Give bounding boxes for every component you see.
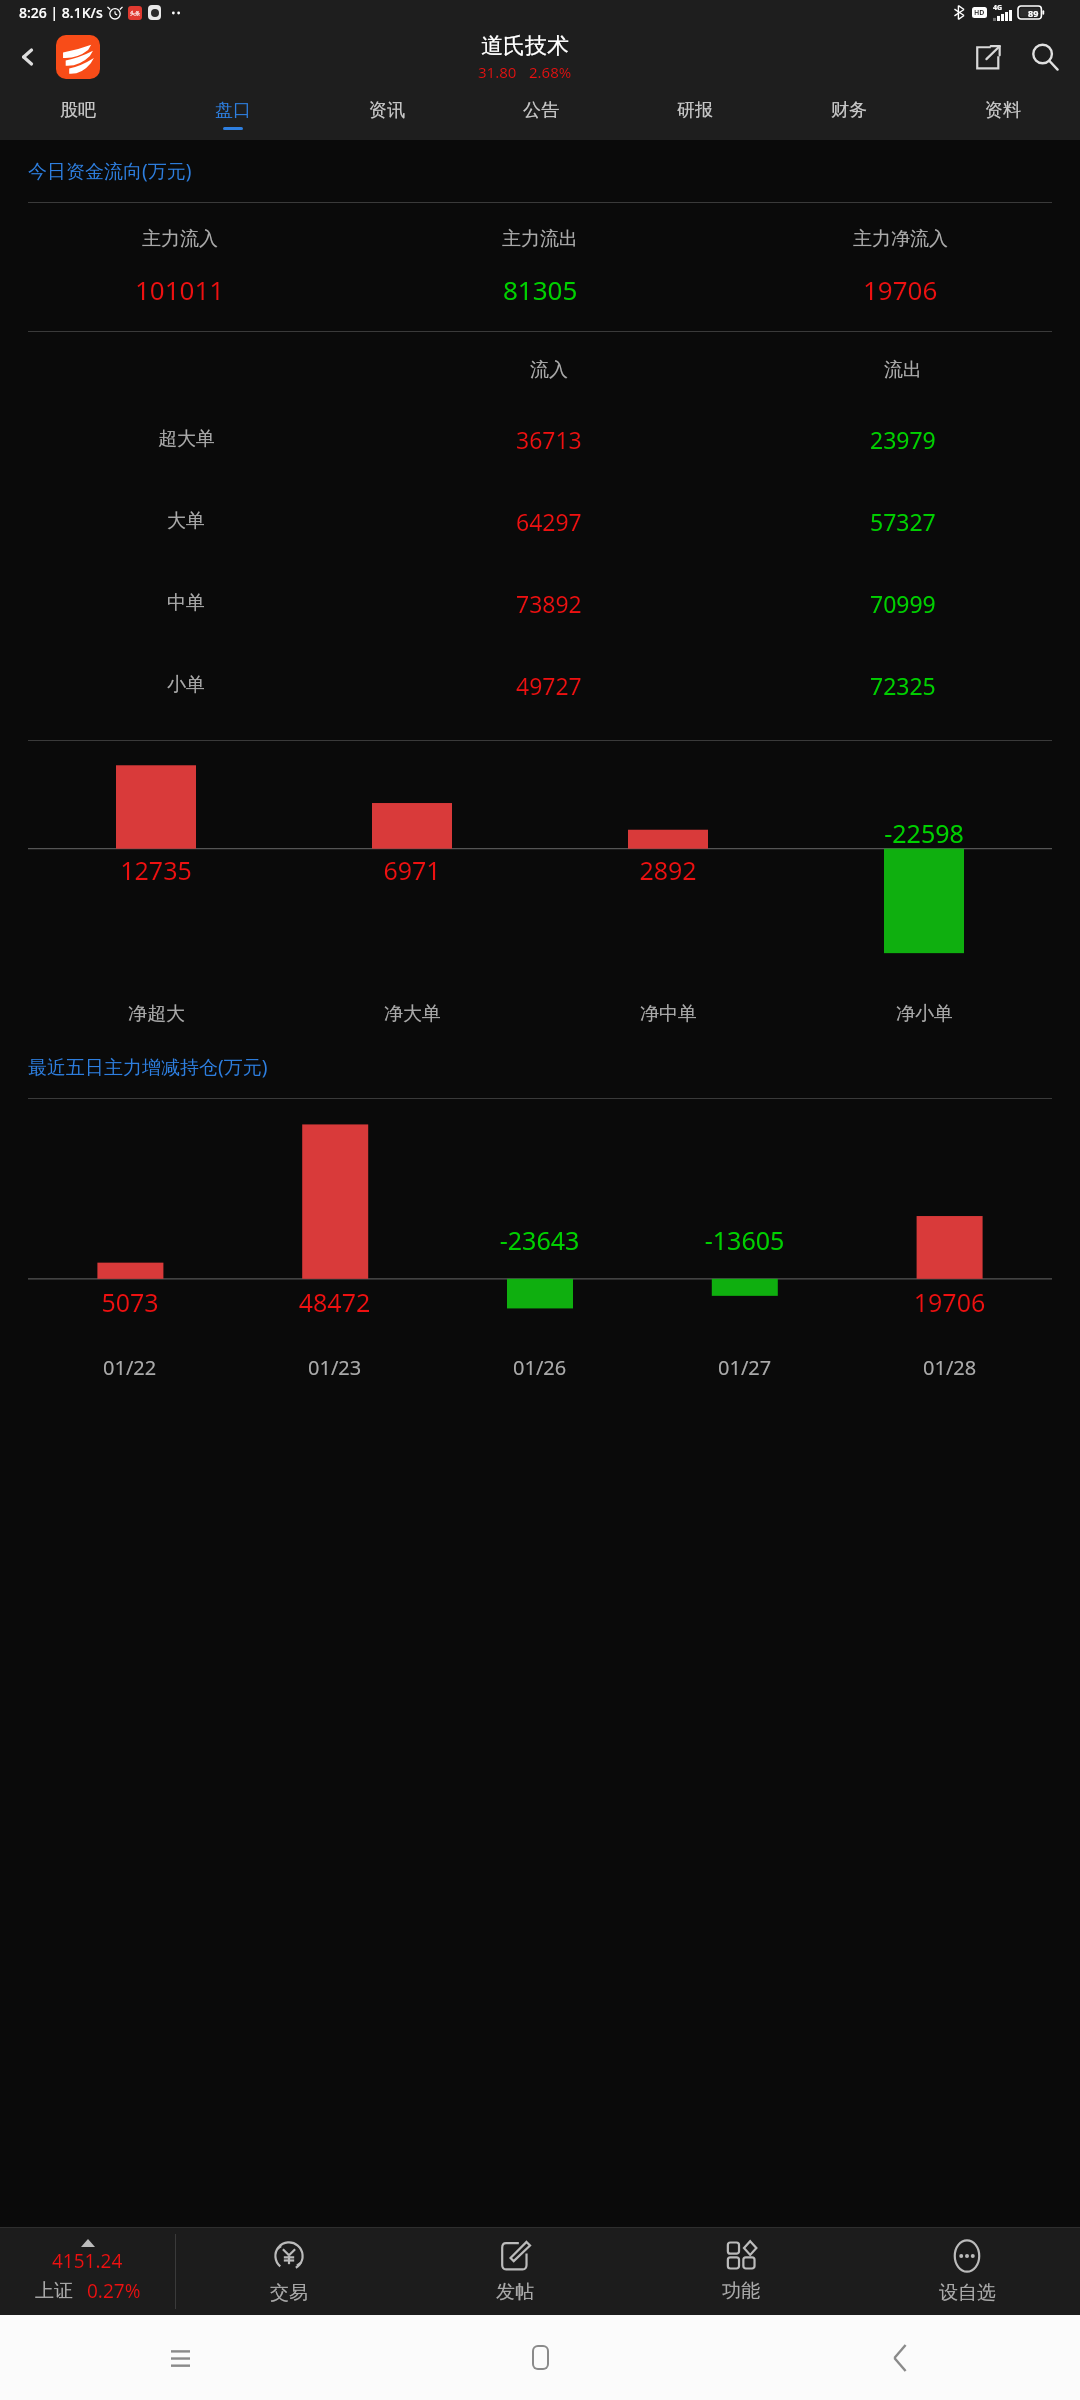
staticText: 小单	[167, 673, 205, 697]
staticText: 主力净流入	[853, 227, 948, 251]
button[interactable]: 股吧	[0, 88, 155, 140]
staticText: 交易	[270, 2281, 308, 2305]
staticText: 01/27	[718, 1354, 772, 1381]
staticText: 2892	[540, 853, 796, 887]
staticText: -22598	[796, 816, 1052, 850]
staticText: 盘口	[215, 99, 251, 122]
button[interactable]: 研报	[618, 88, 772, 140]
button[interactable]: 资讯	[310, 88, 464, 140]
staticText: 中单	[167, 591, 205, 615]
staticText: 资讯	[369, 99, 405, 122]
button[interactable]: 大单	[0, 480, 1080, 562]
staticText: 73892	[516, 588, 582, 619]
staticText: 48472	[232, 1285, 437, 1319]
staticText: 101011	[135, 272, 225, 307]
staticText: 19706	[863, 272, 938, 307]
staticText: 81305	[503, 272, 578, 307]
staticText: 净大单	[384, 1002, 441, 1026]
staticText: 4G	[993, 3, 1003, 13]
staticText: -13605	[642, 1223, 847, 1257]
staticText: 净超大	[128, 1002, 185, 1026]
button[interactable]: 盘口	[155, 88, 310, 140]
staticText: 31.80	[478, 62, 517, 82]
button[interactable]: Back	[0, 25, 56, 88]
staticText: 01/28	[923, 1354, 977, 1381]
staticText: 01/23	[308, 1354, 362, 1381]
staticText: 流出	[884, 358, 922, 382]
staticText: 72325	[870, 670, 936, 701]
staticText: 研报	[677, 99, 713, 122]
staticText: 70999	[870, 588, 936, 619]
button[interactable]: 中单	[0, 562, 1080, 644]
staticText: -23643	[437, 1223, 642, 1257]
staticText: 道氏技术	[481, 32, 569, 60]
staticText: 股吧	[60, 99, 96, 122]
staticText: 23979	[870, 424, 936, 455]
staticText: 01/22	[103, 1354, 157, 1381]
staticText: 功能	[722, 2279, 760, 2303]
staticText: 0.27%	[87, 2278, 141, 2304]
staticText: 89	[1028, 7, 1039, 19]
staticText: 超大单	[158, 427, 215, 451]
button[interactable]: 4151.24	[0, 2228, 175, 2315]
staticText: 36713	[516, 424, 582, 455]
staticText: 8:26 | 8.1K/s	[19, 3, 103, 22]
button[interactable]: App logo	[56, 35, 100, 79]
staticText: 57327	[870, 506, 936, 537]
button[interactable]: 财务	[772, 88, 926, 140]
staticText: 发帖	[496, 2280, 534, 2304]
button[interactable]: 发帖	[402, 2228, 628, 2315]
button[interactable]: Share	[958, 28, 1016, 86]
staticText: 4151.24	[52, 2248, 123, 2274]
staticText: 设自选	[939, 2281, 996, 2305]
staticText: 上证	[35, 2279, 73, 2303]
staticText: 最近五日主力增减持仓(万元)	[28, 1054, 268, 1080]
button[interactable]: 设自选	[854, 2228, 1080, 2315]
button[interactable]: 交易	[176, 2228, 402, 2315]
staticText: 19706	[847, 1285, 1052, 1319]
staticText: 财务	[831, 99, 867, 122]
staticText: 净小单	[896, 1002, 953, 1026]
button[interactable]: 公告	[464, 88, 618, 140]
staticText: 流入	[530, 358, 568, 382]
button[interactable]: Home	[360, 2315, 720, 2400]
button[interactable]: 超大单	[0, 398, 1080, 480]
staticText: 5073	[28, 1285, 232, 1319]
staticText: 12735	[28, 853, 284, 887]
staticText: 主力流入	[142, 227, 218, 251]
button[interactable]: Search	[1016, 28, 1074, 86]
button[interactable]: 小单	[0, 644, 1080, 726]
staticText: 49727	[516, 670, 582, 701]
staticText: 资料	[985, 99, 1021, 122]
staticText: 6971	[284, 853, 540, 887]
staticText: 大单	[167, 509, 205, 533]
staticText: 01/26	[513, 1354, 567, 1381]
button[interactable]: 资料	[926, 88, 1080, 140]
staticText: 今日资金流向(万元)	[28, 158, 192, 184]
staticText: 公告	[523, 99, 559, 122]
staticText: 2.68%	[529, 62, 572, 82]
button[interactable]: 功能	[628, 2228, 854, 2315]
button[interactable]: Recents	[0, 2315, 360, 2400]
button[interactable]: Back	[720, 2315, 1080, 2400]
staticText: 64297	[516, 506, 582, 537]
staticText: HD	[974, 8, 985, 18]
staticText: 净中单	[640, 1002, 697, 1026]
staticText: 头条	[130, 10, 140, 16]
staticText: 主力流出	[502, 227, 578, 251]
